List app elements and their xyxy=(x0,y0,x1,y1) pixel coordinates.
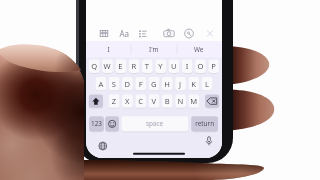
button[interactable]: Hand holding a phone showing the on-scre… xyxy=(0,0,320,180)
